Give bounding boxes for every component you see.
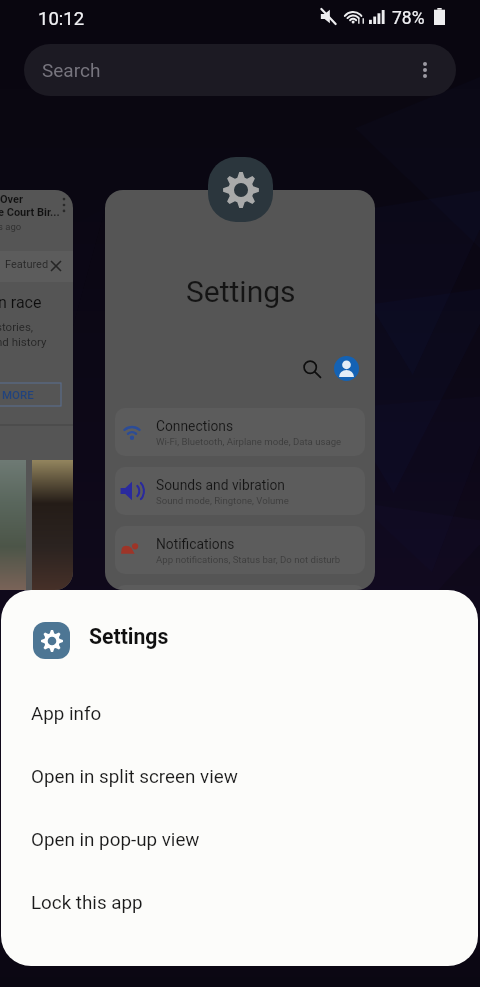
- staticText: s ago: [0, 221, 22, 232]
- button[interactable]: Settings: [105, 190, 375, 590]
- staticText: Sound mode, Ringtone, Volume: [156, 495, 289, 506]
- staticText: Connections: [156, 418, 234, 434]
- button[interactable]: Search: [24, 44, 456, 96]
- staticText: Notifications: [156, 536, 235, 552]
- staticText: 10:12: [38, 8, 85, 30]
- staticText: Over: [0, 193, 24, 206]
- staticText: e Court Bir...: [0, 206, 60, 219]
- staticText: App notifications, Status bar, Do not di…: [156, 554, 341, 565]
- button[interactable]: MORE: [0, 383, 61, 406]
- button[interactable]: Settings: [1, 622, 478, 659]
- button[interactable]: Over: [0, 190, 73, 590]
- button[interactable]: Display: [115, 585, 365, 590]
- staticText: Open in split screen view: [31, 766, 238, 788]
- staticText: MORE: [2, 388, 34, 401]
- staticText: Sounds and vibration: [156, 477, 285, 493]
- button[interactable]: Notifications: [115, 526, 365, 574]
- staticText: Settings: [186, 274, 296, 309]
- button[interactable]: Settings app icon: [208, 157, 273, 222]
- button[interactable]: Connections: [115, 408, 365, 456]
- button[interactable]: Search settings: [300, 357, 324, 381]
- button[interactable]: Open in pop-up view: [1, 806, 478, 869]
- staticText: Settings: [89, 624, 169, 649]
- button[interactable]: Sounds and vibration: [115, 467, 365, 515]
- button[interactable]: More options: [408, 53, 442, 87]
- staticText: Open in pop-up view: [31, 829, 200, 851]
- staticText: stories,: [0, 320, 34, 333]
- button[interactable]: Lock this app: [1, 869, 478, 932]
- staticText: Lock this app: [31, 892, 143, 914]
- button[interactable]: App info: [1, 680, 478, 743]
- staticText: n race: [0, 293, 42, 312]
- staticText: Search: [42, 59, 101, 81]
- button[interactable]: Dismiss: [48, 258, 64, 274]
- button[interactable]: Account: [334, 356, 359, 381]
- staticText: App info: [31, 703, 102, 725]
- staticText: nd history: [0, 335, 47, 348]
- button[interactable]: Open in split screen view: [1, 743, 478, 806]
- staticText: Wi-Fi, Bluetooth, Airplane mode, Data us…: [156, 436, 342, 447]
- staticText: 78%: [392, 8, 425, 29]
- staticText: Featured: [5, 258, 49, 271]
